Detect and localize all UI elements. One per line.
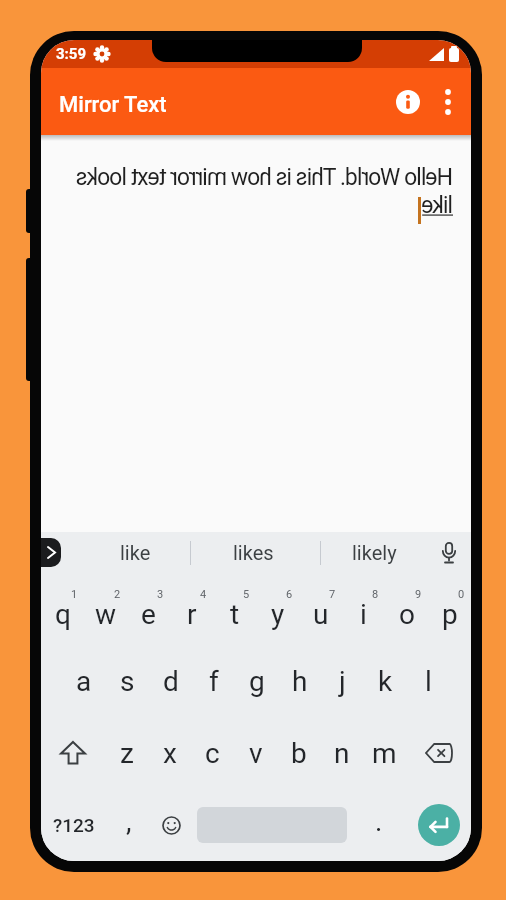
button[interactable]: c	[191, 717, 234, 789]
staticText: f	[209, 665, 219, 698]
staticText: like	[120, 541, 151, 564]
button[interactable]: like	[61, 532, 190, 573]
staticText: s	[120, 665, 135, 698]
staticText: y	[271, 598, 285, 631]
staticText: d	[163, 665, 179, 698]
staticText: n	[334, 737, 350, 770]
button[interactable]: f	[192, 645, 235, 717]
staticText: w	[95, 598, 117, 631]
button[interactable]: d	[149, 645, 192, 717]
button[interactable]: e	[127, 573, 170, 645]
staticText: 7	[329, 588, 336, 601]
staticText: ,	[126, 805, 132, 838]
button[interactable]	[150, 789, 193, 861]
button[interactable]	[418, 804, 460, 846]
button[interactable]: r	[170, 573, 213, 645]
button[interactable]: b	[277, 717, 320, 789]
staticText: likes	[233, 541, 274, 564]
button[interactable]: q	[41, 573, 84, 645]
staticText: h	[292, 665, 308, 698]
staticText: t	[230, 598, 240, 631]
staticText: likely	[352, 541, 397, 564]
button[interactable]: p	[428, 573, 471, 645]
staticText: j	[339, 665, 346, 698]
button[interactable]: .	[351, 789, 406, 861]
button[interactable]: likely	[321, 532, 427, 573]
staticText: r	[187, 598, 197, 631]
staticText: 6	[286, 588, 293, 601]
button[interactable]: n	[320, 717, 363, 789]
button[interactable]: z	[105, 717, 148, 789]
button[interactable]: m	[363, 717, 406, 789]
staticText: p	[442, 598, 458, 631]
button[interactable]: i	[342, 573, 385, 645]
button[interactable]	[193, 789, 351, 861]
button[interactable]: s	[106, 645, 149, 717]
button[interactable]	[427, 532, 471, 573]
staticText: o	[399, 598, 415, 631]
staticText: ?123	[53, 814, 95, 836]
staticText: e	[141, 598, 156, 631]
button[interactable]: u	[299, 573, 342, 645]
button[interactable]: g	[235, 645, 278, 717]
button[interactable]: t	[213, 573, 256, 645]
button[interactable]	[388, 82, 428, 122]
staticText: Mirror Text	[59, 92, 167, 118]
button[interactable]: likes	[191, 532, 320, 573]
button[interactable]: ?123	[41, 789, 107, 861]
button[interactable]: k	[364, 645, 407, 717]
staticText: v	[249, 737, 263, 770]
button[interactable]: ,	[107, 789, 150, 861]
button[interactable]	[41, 717, 105, 789]
staticText: 8	[372, 588, 379, 601]
staticText: 9	[415, 588, 422, 601]
staticText: g	[249, 665, 265, 698]
button[interactable]: h	[278, 645, 321, 717]
staticText: i	[360, 598, 367, 631]
staticText: x	[163, 737, 177, 770]
button[interactable]: w	[84, 573, 127, 645]
button[interactable]: j	[321, 645, 364, 717]
staticText: m	[372, 737, 397, 770]
staticText: q	[55, 598, 71, 631]
staticText: u	[313, 598, 329, 631]
staticText: 3:59	[56, 45, 87, 63]
button[interactable]: l	[407, 645, 450, 717]
staticText: 3	[157, 588, 164, 601]
staticText: .	[375, 805, 383, 838]
staticText: 4	[200, 588, 207, 601]
button[interactable]	[41, 538, 61, 567]
staticText: k	[378, 665, 393, 698]
button[interactable]: a	[62, 645, 106, 717]
button[interactable]	[406, 717, 471, 789]
staticText: a	[76, 665, 92, 698]
staticText: 5	[243, 588, 250, 601]
staticText: c	[205, 737, 220, 770]
staticText: 1	[71, 588, 78, 601]
staticText: 2	[114, 588, 121, 601]
staticText: Hello World. This is how mirror text loo…	[76, 164, 453, 219]
button[interactable]	[432, 86, 464, 118]
staticText: l	[425, 665, 432, 698]
staticText: b	[291, 737, 307, 770]
button[interactable]: y	[256, 573, 299, 645]
staticText: z	[120, 737, 134, 770]
button[interactable]: v	[234, 717, 277, 789]
button[interactable]: x	[148, 717, 191, 789]
staticText: 0	[458, 588, 465, 601]
button[interactable]: o	[385, 573, 428, 645]
